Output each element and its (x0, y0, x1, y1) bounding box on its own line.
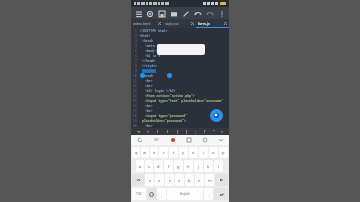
staticText: b (188, 178, 191, 183)
staticText: u (192, 150, 195, 155)
button[interactable]: u (189, 147, 198, 158)
button[interactable]: Google (131, 135, 148, 145)
button[interactable]: z (145, 174, 154, 186)
button[interactable]: r (159, 147, 168, 158)
button[interactable]: / (200, 128, 209, 135)
button[interactable]: GIF (148, 135, 165, 145)
button[interactable]: ( (153, 128, 163, 135)
button[interactable]: s (145, 160, 153, 172)
button[interactable]: c (165, 174, 174, 186)
button[interactable]: y (179, 147, 188, 158)
button[interactable]: w (141, 147, 149, 158)
button[interactable]: n (195, 174, 204, 186)
button[interactable]: Settings (197, 135, 213, 145)
staticText: form.js (198, 21, 210, 26)
staticText: < (147, 129, 150, 134)
button[interactable]: Save (157, 9, 166, 18)
button[interactable]: Expand (213, 135, 229, 145)
button[interactable]: p (219, 147, 228, 158)
button[interactable]: Backspace (215, 174, 228, 186)
staticText: <br> (145, 84, 153, 88)
button[interactable]: Enter (214, 188, 228, 200)
button[interactable]: Open folder (169, 9, 178, 18)
staticText: <br> (145, 104, 153, 108)
staticText: GIF (154, 138, 159, 142)
button[interactable]: b (185, 174, 194, 186)
button[interactable]: a (136, 160, 144, 172)
staticText: p (222, 150, 225, 155)
button[interactable]: e (150, 147, 158, 158)
button[interactable]: t (169, 147, 178, 158)
staticText: t (173, 150, 175, 155)
button[interactable]: o (209, 147, 218, 158)
staticText: 10 (133, 74, 137, 78)
staticText: d (157, 164, 160, 169)
button[interactable]: k (204, 160, 213, 172)
button[interactable]: = (218, 128, 227, 135)
staticText: / (204, 129, 206, 134)
button[interactable]: Sticker (181, 135, 197, 145)
button[interactable]: Undo (193, 9, 202, 18)
button[interactable]: Emoji (147, 188, 156, 200)
staticText: 6 (135, 54, 137, 58)
button[interactable]: Shift (132, 174, 144, 186)
staticText: <form action="action.php"> (145, 94, 195, 98)
button[interactable]: h (184, 160, 193, 172)
staticText: m (208, 178, 212, 183)
staticText: , (161, 192, 163, 197)
button[interactable]: x (155, 174, 164, 186)
staticText: 1 (135, 29, 137, 33)
button[interactable]: style.css (163, 19, 196, 28)
button[interactable]: English (167, 188, 203, 200)
button[interactable]: j (194, 160, 203, 172)
staticText: y (182, 150, 185, 155)
button[interactable]: ) (163, 128, 173, 135)
staticText: 16 (133, 104, 137, 108)
button[interactable]: } (182, 128, 191, 135)
button[interactable]: g (174, 160, 183, 172)
button[interactable]: q (132, 147, 140, 158)
staticText: 14 (133, 94, 137, 98)
button[interactable]: Menu (134, 9, 143, 18)
staticText: r (163, 150, 165, 155)
staticText: 18 (133, 114, 137, 118)
button[interactable]: Record (165, 135, 181, 145)
button[interactable]: " (209, 128, 218, 135)
staticText: . (208, 192, 210, 197)
staticText: s (148, 164, 150, 169)
button[interactable]: i (199, 147, 208, 158)
staticText: English (180, 192, 190, 196)
staticText: 8 (135, 64, 137, 68)
button[interactable]: ?123 (132, 188, 146, 200)
button[interactable] (157, 44, 205, 55)
staticText: " (213, 129, 215, 134)
button[interactable]: { (173, 128, 182, 135)
button[interactable]: Edit (181, 9, 190, 18)
button[interactable]: Redo (205, 9, 214, 18)
button[interactable]: More options (217, 9, 226, 18)
button[interactable]: index.html (131, 19, 163, 28)
staticText: 11 (133, 79, 137, 83)
staticText: i (203, 150, 205, 155)
staticText: style.css (165, 21, 179, 26)
button[interactable]: Settings (145, 9, 154, 18)
button[interactable]: form.js (196, 19, 229, 28)
button[interactable]: ; (191, 128, 200, 135)
button[interactable]: m (205, 174, 214, 186)
button[interactable]: v (175, 174, 184, 186)
button[interactable]: d (154, 160, 163, 172)
staticText: 5 (135, 49, 137, 53)
staticText: z (149, 178, 151, 183)
button[interactable]: l (214, 160, 223, 172)
button[interactable]: Run (210, 109, 223, 122)
button[interactable]: < (143, 128, 153, 135)
staticText: <br> (145, 79, 153, 83)
button[interactable]: f (164, 160, 173, 172)
staticText: a (139, 164, 142, 169)
staticText: ⇥ (137, 130, 140, 134)
button[interactable]: ⇥ (133, 128, 143, 135)
staticText: ) (167, 129, 169, 134)
button[interactable]: , (157, 188, 166, 200)
staticText: w (143, 150, 147, 155)
